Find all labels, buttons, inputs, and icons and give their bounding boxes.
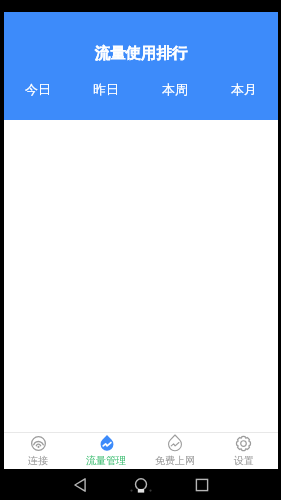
button[interactable]: 本周 <box>140 82 209 120</box>
staticText: 流量管理 <box>86 454 126 467</box>
staticText: 免费上网 <box>155 454 195 467</box>
button[interactable]: 昨日 <box>72 82 140 120</box>
button[interactable]: Home <box>115 469 166 500</box>
button[interactable]: 流量管理 <box>72 433 140 469</box>
button[interactable]: 今日 <box>4 82 72 120</box>
staticText: 设置 <box>234 454 254 467</box>
button[interactable]: Recent apps <box>176 469 227 500</box>
staticText: 本周 <box>162 81 188 97</box>
button[interactable]: Back <box>54 469 105 500</box>
staticText: 今日 <box>25 81 51 97</box>
button[interactable]: 免费上网 <box>140 433 209 469</box>
button[interactable]: 设置 <box>209 433 278 469</box>
staticText: 流量使用排行 <box>95 43 188 62</box>
staticText: 连接 <box>28 454 48 467</box>
staticText: 本月 <box>231 81 257 97</box>
staticText: 流量使用排行 <box>95 43 188 62</box>
button[interactable]: 本月 <box>209 82 278 120</box>
button[interactable]: 连接 <box>4 433 72 469</box>
staticText: 昨日 <box>93 81 119 97</box>
